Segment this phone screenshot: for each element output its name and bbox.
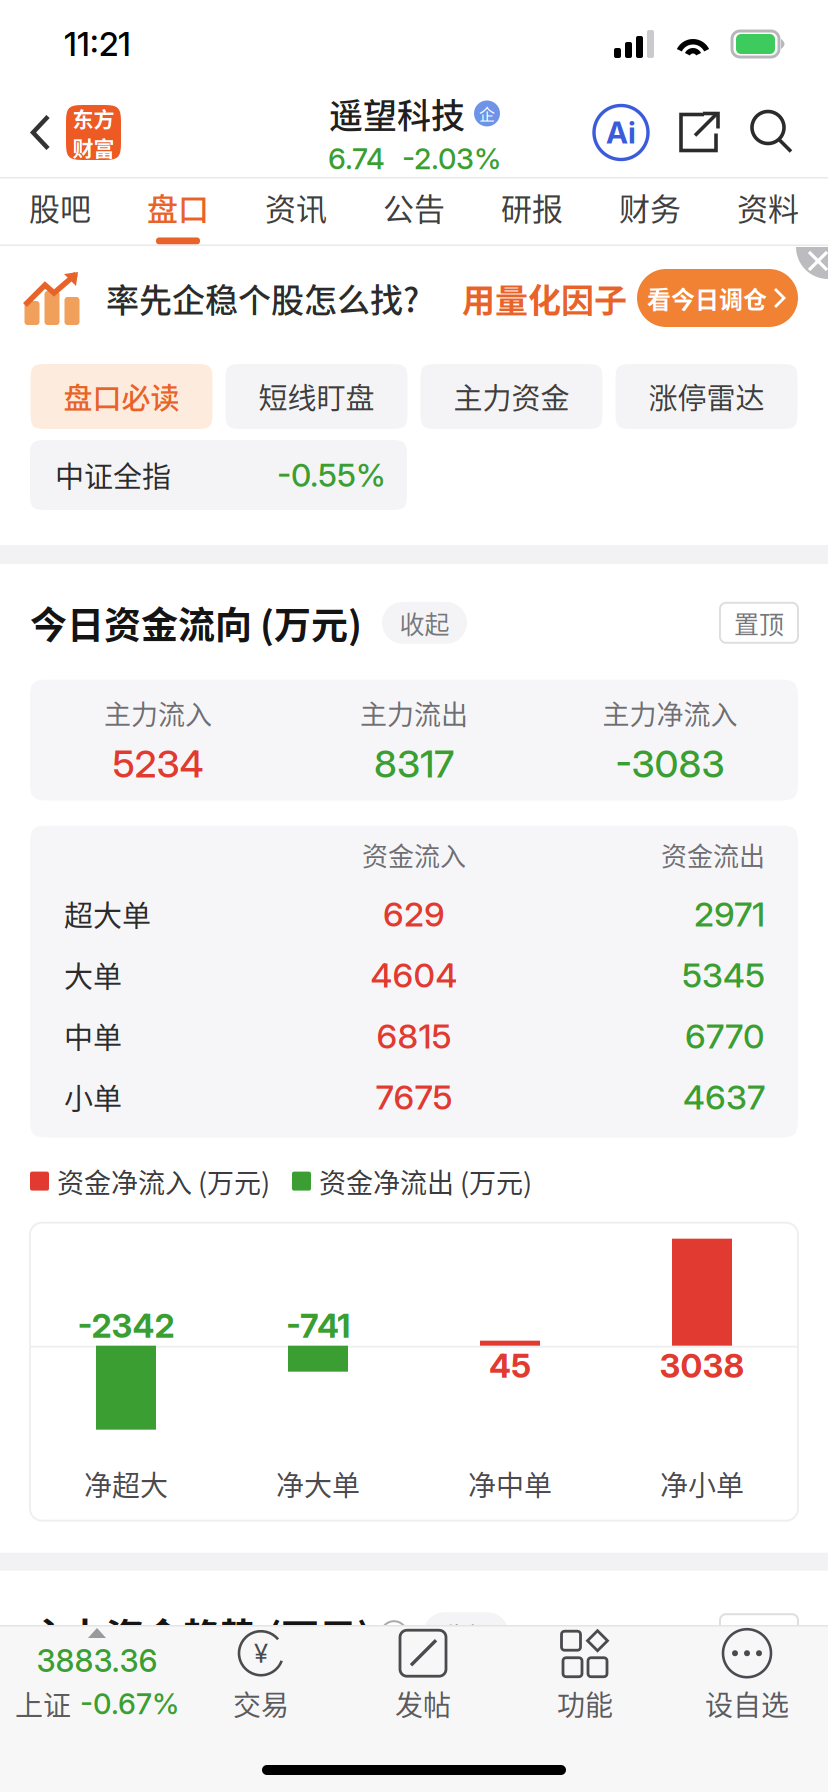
staticText: -0.55% bbox=[277, 456, 386, 494]
button[interactable]: 财务 bbox=[591, 178, 709, 244]
staticText: 中单 bbox=[64, 1015, 122, 1057]
staticText: 4604 bbox=[370, 954, 457, 996]
staticText: 交易 bbox=[233, 1683, 289, 1724]
staticText: 用量化因子 bbox=[462, 274, 627, 322]
staticText: 2971 bbox=[694, 893, 765, 935]
staticText: 置顶 bbox=[734, 605, 784, 641]
staticText: 中证全指 bbox=[55, 454, 171, 496]
staticText: 财富 bbox=[72, 132, 114, 162]
button[interactable]: 中证全指 bbox=[30, 440, 407, 510]
staticText: -2342 bbox=[77, 1306, 174, 1346]
staticText: 置顶 bbox=[735, 1617, 783, 1652]
staticText: 看今日调仓 bbox=[647, 281, 767, 315]
button[interactable]: 公告 bbox=[355, 178, 473, 244]
button[interactable]: 涨停雷达 bbox=[615, 364, 797, 429]
staticText: 功能 bbox=[557, 1683, 613, 1724]
staticText: 东方 bbox=[72, 103, 114, 133]
staticText: -3083 bbox=[615, 741, 724, 787]
button[interactable]: 研报 bbox=[473, 178, 591, 244]
button[interactable]: 盘口必读 bbox=[30, 364, 212, 429]
staticText: -2.03% bbox=[402, 141, 501, 176]
staticText: 主力资金趋势 (万元) bbox=[30, 1607, 371, 1662]
button[interactable]: 率先企稳个股怎么找? bbox=[0, 246, 828, 364]
staticText: 收起 bbox=[442, 1617, 490, 1652]
staticText: 小单 bbox=[64, 1076, 122, 1118]
button[interactable]: Search bbox=[748, 108, 796, 156]
staticText: 大单 bbox=[64, 954, 122, 996]
staticText: 629 bbox=[383, 893, 445, 935]
staticText: 主力资金 bbox=[453, 375, 569, 417]
staticText: 6770 bbox=[685, 1015, 765, 1057]
button[interactable]: 设自选 bbox=[666, 1626, 828, 1724]
staticText: 涨停雷达 bbox=[648, 375, 764, 417]
staticText: ¥ bbox=[254, 1637, 268, 1669]
staticText: 率先企稳个股怎么找? bbox=[106, 274, 419, 322]
staticText: 资金流出 bbox=[661, 836, 765, 873]
button[interactable]: Shanghai Composite index bbox=[0, 1626, 180, 1724]
staticText: 净超大 bbox=[84, 1463, 168, 1504]
button[interactable]: 盘口 bbox=[119, 178, 237, 244]
staticText: 资料 bbox=[737, 185, 799, 229]
staticText: 资金净流入 (万元) bbox=[57, 1162, 270, 1201]
staticText: 公告 bbox=[383, 185, 445, 229]
staticText: 6.74 bbox=[328, 141, 385, 176]
button[interactable]: 收起 bbox=[382, 602, 467, 644]
staticText: 盘口 bbox=[147, 185, 209, 229]
staticText: 5345 bbox=[682, 954, 765, 996]
staticText: 3883.36 bbox=[36, 1642, 157, 1679]
button[interactable]: 资讯 bbox=[237, 178, 355, 244]
staticText: 3038 bbox=[659, 1346, 744, 1386]
button[interactable]: Close ad bbox=[795, 246, 828, 280]
staticText: 发帖 bbox=[395, 1683, 451, 1724]
staticText: 45 bbox=[489, 1346, 531, 1386]
staticText: 企 bbox=[479, 102, 495, 125]
staticText: 资讯 bbox=[265, 185, 327, 229]
button[interactable]: 发帖 bbox=[342, 1626, 504, 1724]
button[interactable]: 股吧 bbox=[1, 178, 119, 244]
staticText: 今日资金流向 (万元) bbox=[30, 596, 362, 650]
staticText: 超大单 bbox=[64, 893, 151, 935]
staticText: 盘口必读 bbox=[63, 375, 179, 417]
button[interactable]: 短线盯盘 bbox=[225, 364, 407, 429]
staticText: 研报 bbox=[501, 185, 563, 229]
staticText: Ai bbox=[606, 114, 636, 151]
staticText: 收起 bbox=[399, 605, 449, 641]
button[interactable]: 资料 bbox=[709, 178, 827, 244]
button[interactable]: Back bbox=[0, 88, 121, 177]
button[interactable]: Share bbox=[674, 108, 722, 156]
staticText: 7675 bbox=[375, 1076, 452, 1118]
staticText: 主力净流入 bbox=[602, 693, 737, 733]
staticText: 8317 bbox=[374, 741, 454, 787]
staticText: 净大单 bbox=[276, 1463, 360, 1504]
staticText: 上证 bbox=[15, 1683, 71, 1724]
button[interactable]: 置顶 bbox=[720, 603, 798, 643]
staticText: 主力流入 bbox=[104, 693, 212, 733]
staticText: 股吧 bbox=[29, 185, 91, 229]
staticText: 11:21 bbox=[64, 24, 131, 64]
staticText: 资金流入 bbox=[362, 836, 466, 873]
staticText: 遥望科技 bbox=[329, 89, 465, 138]
button[interactable]: ¥ bbox=[180, 1626, 342, 1724]
staticText: -0.67% bbox=[80, 1686, 179, 1721]
staticText: 资金净流出 (万元) bbox=[319, 1162, 532, 1201]
staticText: 财务 bbox=[619, 185, 681, 229]
staticText: 5234 bbox=[112, 741, 203, 787]
staticText: 短线盯盘 bbox=[258, 375, 374, 417]
button[interactable]: AI assistant bbox=[594, 105, 648, 159]
button[interactable]: 功能 bbox=[504, 1626, 666, 1724]
staticText: 净小单 bbox=[660, 1463, 744, 1504]
staticText: -741 bbox=[286, 1306, 350, 1346]
staticText: 主力流出 bbox=[360, 693, 468, 733]
staticText: 6815 bbox=[376, 1015, 451, 1057]
staticText: 4637 bbox=[683, 1076, 765, 1118]
button[interactable]: 主力资金 bbox=[420, 364, 602, 429]
staticText: 净中单 bbox=[468, 1463, 552, 1504]
staticText: 设自选 bbox=[705, 1683, 789, 1724]
